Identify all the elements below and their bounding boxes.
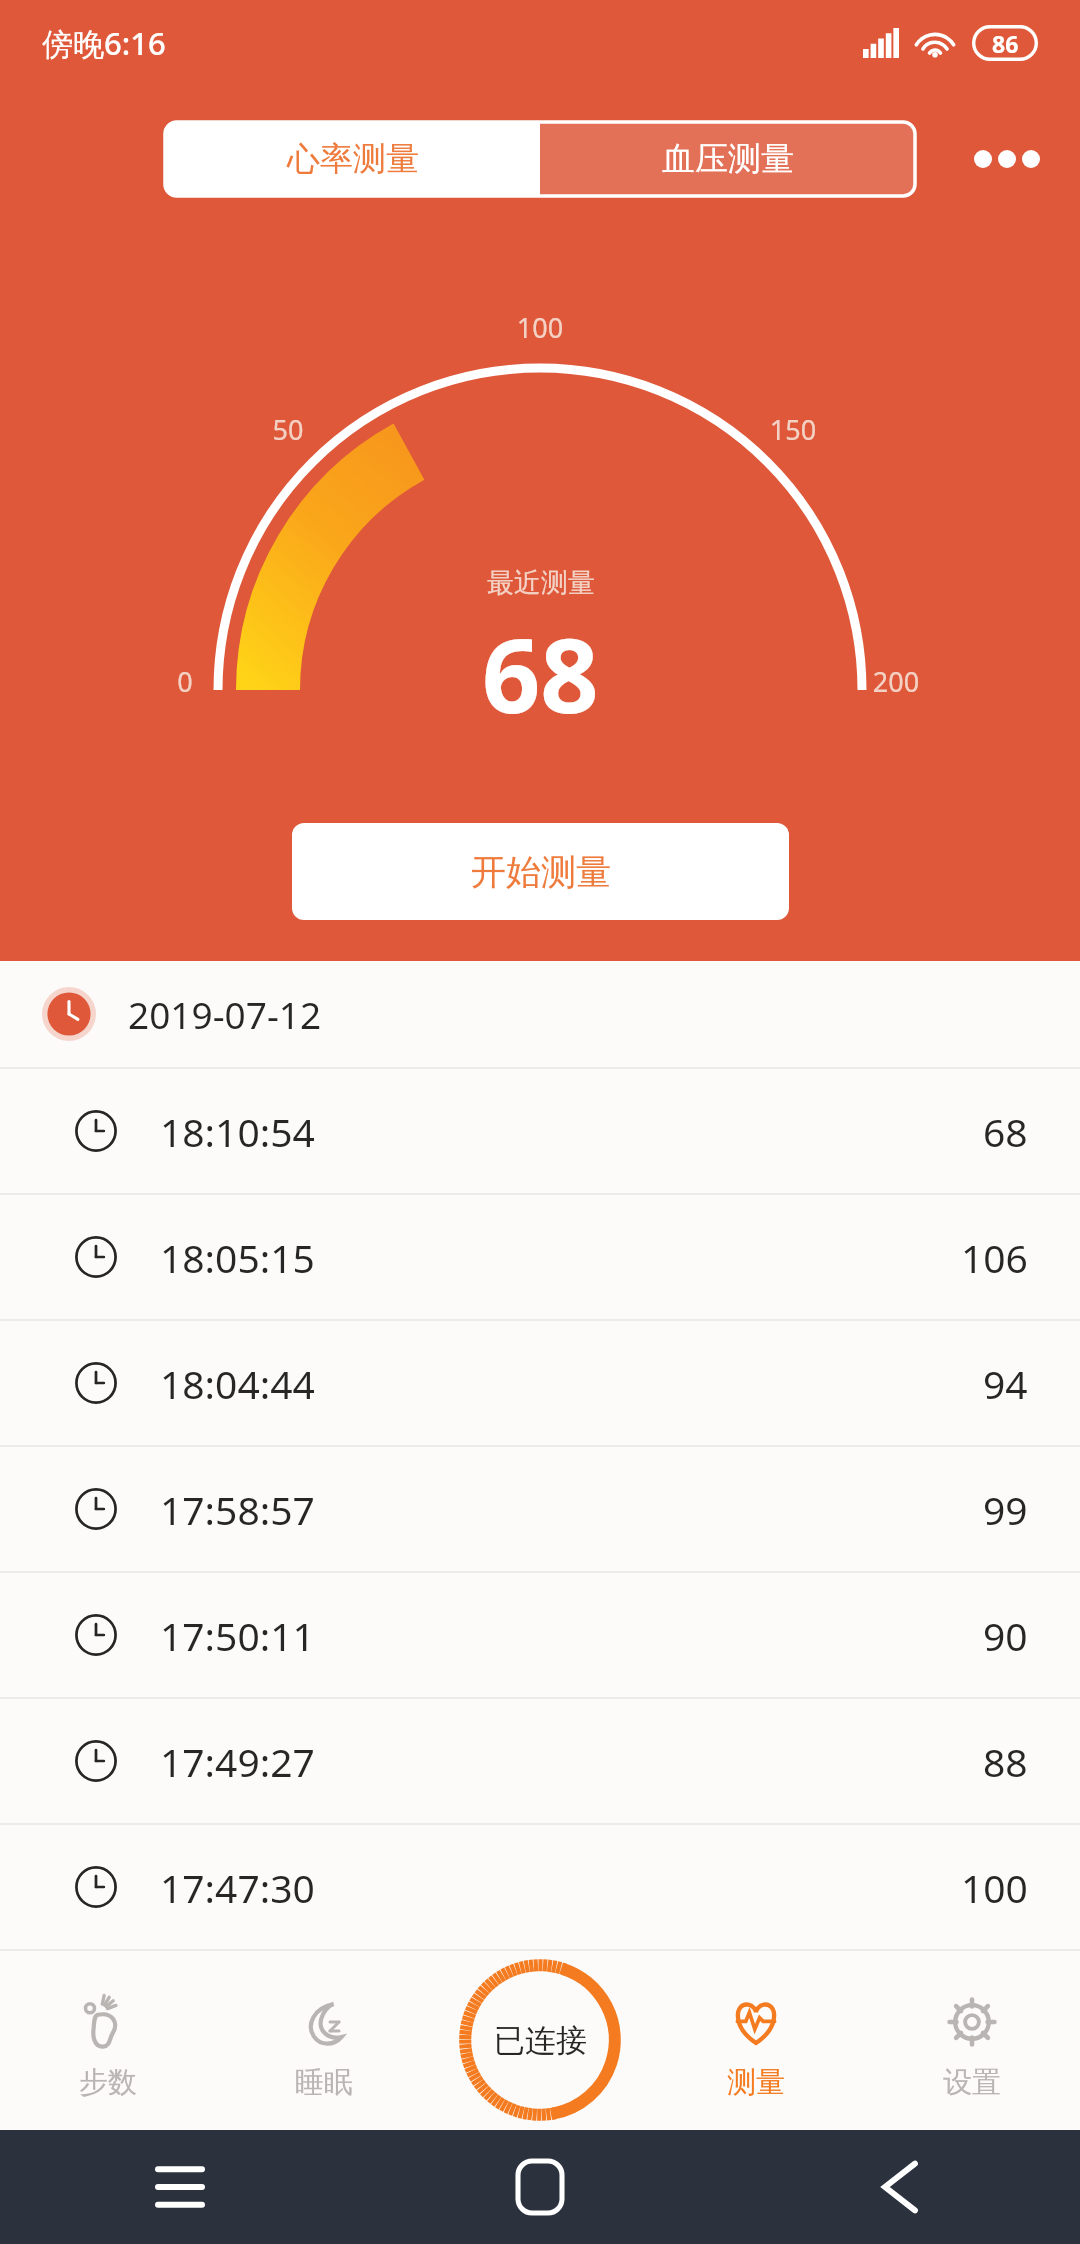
button[interactable]: 2019-07-12 <box>0 961 1080 1067</box>
button[interactable]: 17:50:11 <box>0 1573 1080 1697</box>
button[interactable]: 18:10:54 <box>0 1069 1080 1193</box>
button[interactable]: 测量 <box>648 1962 864 2130</box>
staticText: 88 <box>983 1735 1028 1788</box>
staticText: 50 <box>243 411 333 448</box>
button[interactable]: 18:05:15 <box>0 1195 1080 1319</box>
button[interactable]: 血压测量 <box>540 122 915 196</box>
staticText: 心率测量 <box>287 138 419 180</box>
staticText: 18:05:15 <box>160 1231 315 1284</box>
button[interactable]: 设置 <box>864 1962 1080 2130</box>
staticText: 68 <box>983 1105 1028 1158</box>
button[interactable]: 步数 <box>0 1962 216 2130</box>
staticText: 17:58:57 <box>160 1483 315 1536</box>
staticText: 血压测量 <box>662 138 794 180</box>
staticText: 17:49:27 <box>160 1735 315 1788</box>
staticText: 测量 <box>727 2064 785 2101</box>
staticText: 最近测量 <box>487 566 595 600</box>
staticText: 90 <box>983 1609 1028 1662</box>
staticText: 100 <box>495 309 585 346</box>
staticText: 106 <box>961 1231 1028 1284</box>
staticText: 步数 <box>79 2064 137 2101</box>
staticText: 设置 <box>943 2064 1001 2101</box>
button[interactable]: Recent apps <box>0 2130 360 2244</box>
button[interactable]: 18:04:44 <box>0 1321 1080 1445</box>
staticText: 150 <box>748 411 838 448</box>
button[interactable]: 17:49:27 <box>0 1699 1080 1823</box>
staticText: 100 <box>961 1861 1028 1914</box>
button[interactable]: More options <box>962 114 1052 204</box>
button[interactable]: 已连接 <box>456 1956 624 2124</box>
button[interactable]: 睡眠 <box>216 1962 432 2130</box>
staticText: 17:47:30 <box>160 1861 315 1914</box>
staticText: 18:04:44 <box>160 1357 315 1410</box>
staticText: 0 <box>140 663 230 700</box>
button[interactable]: 17:58:57 <box>0 1447 1080 1571</box>
button[interactable]: Back <box>720 2130 1080 2244</box>
staticText: 傍晚6:16 <box>42 22 166 64</box>
staticText: 睡眠 <box>295 2064 353 2101</box>
staticText: 99 <box>983 1483 1028 1536</box>
staticText: 68 <box>482 604 599 743</box>
staticText: 2019-07-12 <box>128 989 322 1039</box>
staticText: 已连接 <box>494 2021 587 2060</box>
button[interactable]: Home <box>360 2130 720 2244</box>
staticText: 94 <box>983 1357 1028 1410</box>
staticText: 开始测量 <box>471 850 611 894</box>
staticText: 17:50:11 <box>160 1609 315 1662</box>
staticText: 18:10:54 <box>160 1105 315 1158</box>
button[interactable]: 心率测量 <box>165 122 540 196</box>
staticText: 86 <box>992 28 1019 59</box>
button[interactable]: 17:47:30 <box>0 1825 1080 1949</box>
button[interactable]: 开始测量 <box>292 823 789 920</box>
staticText: 200 <box>851 663 941 700</box>
